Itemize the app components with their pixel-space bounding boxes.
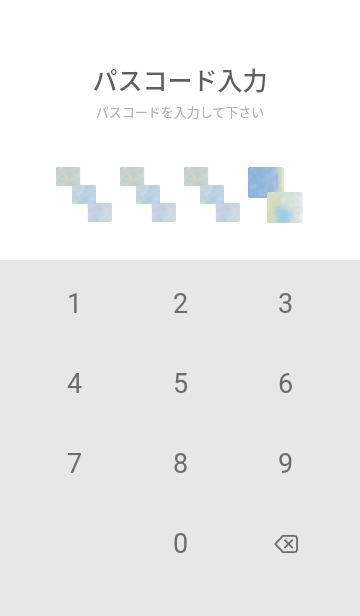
button[interactable]: Backspace <box>233 504 338 584</box>
staticText: 6 <box>278 368 294 400</box>
button[interactable]: 3 <box>233 264 338 344</box>
other: Backspace <box>274 535 298 553</box>
button[interactable]: 5 <box>128 344 233 424</box>
button[interactable]: 9 <box>233 424 338 504</box>
staticText: 8 <box>173 448 189 480</box>
button[interactable]: 4 <box>22 344 128 424</box>
staticText: 7 <box>67 448 83 480</box>
staticText: パスコードを入力して下さい <box>0 102 360 121</box>
staticText: 3 <box>278 288 294 320</box>
staticText: 4 <box>67 368 83 400</box>
button[interactable]: 0 <box>128 504 233 584</box>
button[interactable]: 8 <box>128 424 233 504</box>
button[interactable]: 7 <box>22 424 128 504</box>
staticText: 2 <box>173 288 189 320</box>
staticText: 1 <box>67 288 83 320</box>
button[interactable]: 6 <box>233 344 338 424</box>
button[interactable]: 2 <box>128 264 233 344</box>
staticText: 9 <box>278 448 294 480</box>
button[interactable]: 1 <box>22 264 128 344</box>
staticText: パスコード入力 <box>0 61 360 97</box>
staticText: 5 <box>173 368 189 400</box>
staticText: 0 <box>173 528 189 560</box>
